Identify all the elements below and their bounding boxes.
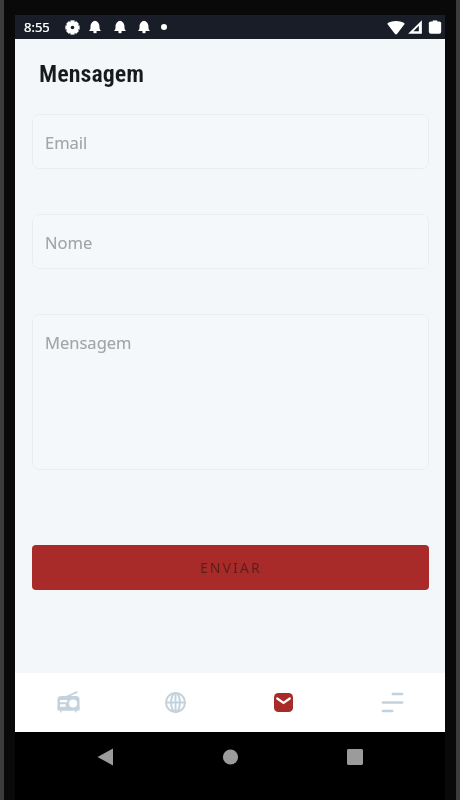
- staticText: ENVIAR: [200, 558, 262, 577]
- button[interactable]: Radio: [15, 673, 122, 732]
- staticText: 8:55: [24, 18, 50, 36]
- staticText: Nome: [45, 231, 93, 253]
- staticText: Email: [45, 131, 88, 153]
- button[interactable]: Browse: [122, 673, 229, 732]
- button[interactable]: Email: [32, 114, 429, 169]
- button[interactable]: Nome: [32, 214, 429, 269]
- button[interactable]: Mensagem: [32, 314, 429, 470]
- button[interactable]: Messages: [229, 673, 337, 732]
- staticText: Mensagem: [39, 60, 145, 88]
- button[interactable]: ENVIAR: [32, 545, 429, 590]
- button[interactable]: More: [337, 673, 445, 732]
- staticText: Mensagem: [45, 331, 132, 353]
